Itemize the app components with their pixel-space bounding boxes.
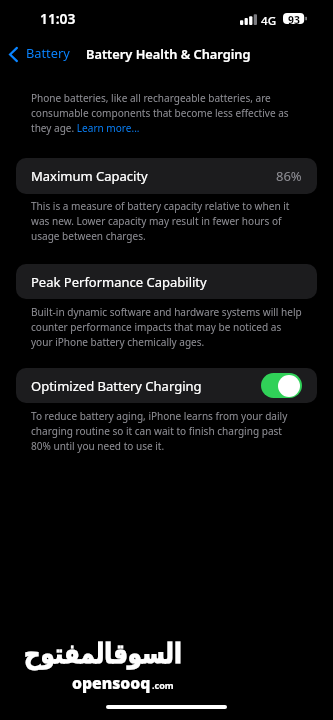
staticText: السوق‍المفتوح bbox=[24, 638, 182, 669]
staticText: opensooq bbox=[72, 671, 151, 693]
staticText: Optimized Battery Charging bbox=[31, 377, 202, 395]
button[interactable]: Maximum Capacity bbox=[16, 158, 317, 194]
button[interactable]: Optimized Battery Charging, on bbox=[261, 373, 302, 398]
staticText: 11:03 bbox=[40, 9, 76, 28]
staticText: Peak Performance Capability bbox=[31, 273, 207, 291]
button[interactable]: Back to Battery bbox=[9, 43, 70, 61]
staticText: Battery Health & Charging bbox=[86, 45, 251, 62]
staticText: Maximum Capacity bbox=[31, 167, 148, 185]
button[interactable]: Optimized Battery Charging bbox=[16, 368, 317, 403]
other: Battery 93 percent bbox=[283, 13, 307, 24]
staticText: 86% bbox=[276, 167, 302, 185]
staticText: Phone batteries, like all rechargeable b… bbox=[31, 91, 303, 135]
staticText: 93 bbox=[288, 13, 300, 24]
staticText: To reduce battery aging, iPhone learns f… bbox=[31, 409, 303, 453]
staticText: This is a measure of battery capacity re… bbox=[31, 199, 303, 243]
other: Cellular signal bbox=[240, 14, 257, 25]
staticText: .com bbox=[152, 679, 174, 691]
button[interactable]: Peak Performance Capability bbox=[16, 264, 317, 299]
staticText: 4G bbox=[261, 13, 277, 29]
staticText: Battery bbox=[26, 44, 70, 61]
staticText: Built-in dynamic software and hardware s… bbox=[31, 305, 303, 349]
